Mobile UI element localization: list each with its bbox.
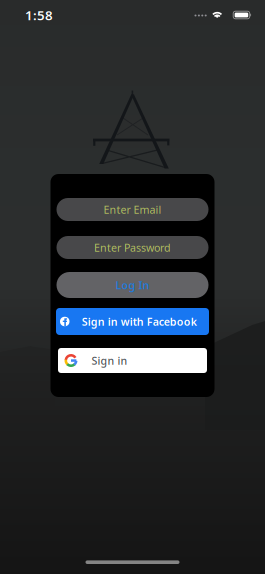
- staticText: Log In: [115, 278, 149, 292]
- staticText: Enter Email: [103, 202, 161, 217]
- staticText: 1:58: [25, 6, 53, 24]
- button[interactable]: Log In: [56, 272, 208, 298]
- button[interactable]: Sign in with Facebook: [56, 308, 209, 335]
- button[interactable]: Enter Password: [56, 236, 208, 259]
- button[interactable]: Sign in: [58, 348, 207, 373]
- staticText: Sign in: [91, 353, 127, 368]
- staticText: Sign in with Facebook: [82, 314, 197, 329]
- staticText: Enter Password: [94, 240, 171, 255]
- button[interactable]: Enter Email: [56, 198, 208, 221]
